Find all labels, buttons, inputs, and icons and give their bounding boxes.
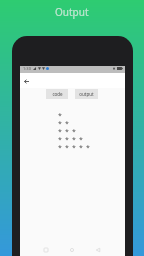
staticText: code	[52, 91, 63, 97]
button[interactable]: Back	[92, 244, 104, 256]
staticText: *	[72, 135, 76, 143]
staticText: *	[58, 111, 62, 119]
button[interactable]: Home	[66, 244, 78, 256]
staticText: *	[79, 135, 83, 143]
button[interactable]: Recents	[40, 244, 52, 256]
staticText: output	[79, 91, 94, 97]
staticText: *	[86, 143, 90, 151]
staticText: *	[58, 135, 62, 143]
staticText: *	[58, 127, 62, 135]
staticText: *	[58, 119, 62, 127]
staticText: *	[72, 143, 76, 151]
staticText: *	[58, 143, 62, 151]
staticText: Output	[55, 5, 89, 19]
button[interactable]: output	[75, 89, 98, 99]
staticText: *	[65, 127, 69, 135]
staticText: *	[65, 135, 69, 143]
staticText: *	[65, 119, 69, 127]
staticText: *	[79, 143, 83, 151]
staticText: 1:30	[23, 66, 31, 71]
staticText: *	[72, 127, 76, 135]
button[interactable]: Back	[21, 76, 31, 86]
staticText: *	[65, 143, 69, 151]
button[interactable]: code	[46, 89, 68, 99]
